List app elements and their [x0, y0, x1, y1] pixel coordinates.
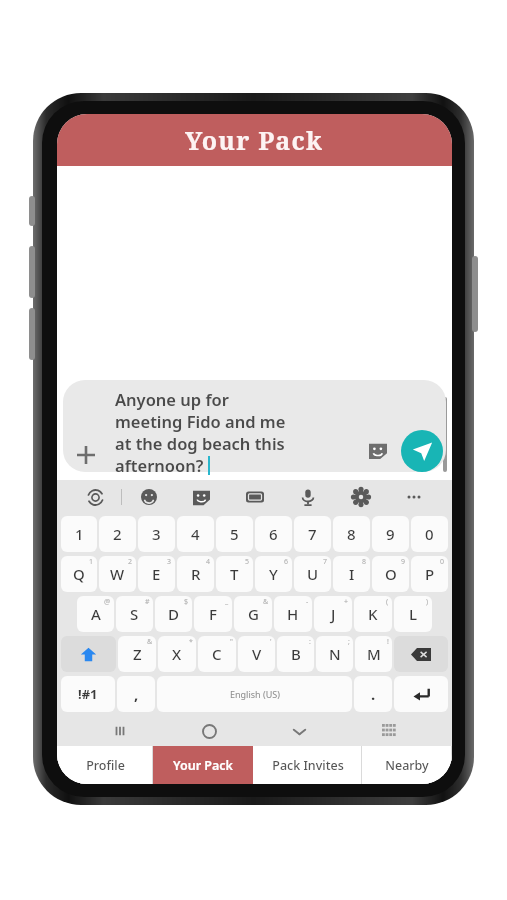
staticText: & [263, 597, 269, 607]
staticText: " [230, 637, 233, 647]
button[interactable]: Send [401, 430, 443, 472]
staticText: ( [386, 597, 389, 607]
staticText: Nearby [385, 757, 429, 774]
button[interactable]: # [116, 596, 153, 632]
staticText: 2 [128, 557, 133, 567]
button[interactable]: ( [354, 596, 392, 632]
button[interactable]: Shift [61, 636, 116, 672]
button[interactable]: Backspace [394, 636, 448, 672]
button[interactable]: Settings [334, 480, 387, 514]
button[interactable]: More options [387, 480, 440, 514]
staticText: V [252, 644, 262, 664]
button[interactable]: 2 [99, 516, 136, 552]
button[interactable]: Voice input [281, 480, 334, 514]
staticText: 3 [167, 557, 172, 567]
staticText: 4 [206, 557, 211, 567]
staticText: & [147, 637, 153, 647]
staticText: 1 [75, 524, 84, 544]
staticText: 4 [191, 524, 200, 544]
staticText: $ [184, 597, 189, 607]
button[interactable]: + [314, 596, 352, 632]
button[interactable]: 3 [138, 556, 175, 592]
button[interactable]: 4 [177, 556, 214, 592]
staticText: A [91, 604, 101, 624]
button[interactable]: ) [394, 596, 432, 632]
button[interactable]: 8 [333, 556, 370, 592]
button[interactable]: Pack Invites [253, 746, 362, 784]
button[interactable]: !#1 [61, 676, 115, 712]
button[interactable]: 1 [61, 556, 97, 592]
button[interactable]: 1 [61, 516, 97, 552]
button[interactable]: $ [155, 596, 192, 632]
button[interactable]: : [277, 636, 314, 672]
staticText: T [230, 564, 239, 584]
button[interactable]: Recents [75, 716, 164, 746]
button[interactable]: Translate [69, 480, 121, 514]
button[interactable]: 0 [411, 556, 448, 592]
button[interactable]: Profile [57, 746, 153, 784]
button[interactable]: 6 [255, 516, 292, 552]
button[interactable]: 6 [255, 556, 292, 592]
button[interactable]: Your Pack [153, 746, 253, 784]
staticText: 8 [347, 524, 356, 544]
button[interactable]: 4 [177, 516, 214, 552]
staticText: C [212, 644, 222, 664]
staticText: R [191, 564, 201, 584]
button[interactable]: Stickers [361, 434, 395, 468]
button[interactable]: 9 [372, 516, 409, 552]
button[interactable]: & [234, 596, 272, 632]
button[interactable]: - [274, 596, 312, 632]
button[interactable]: ' [238, 636, 275, 672]
staticText: Your Pack [185, 123, 324, 157]
staticText: D [168, 604, 179, 624]
button[interactable]: 9 [372, 556, 409, 592]
button[interactable]: 8 [333, 516, 370, 552]
button[interactable]: English (US) [157, 676, 352, 712]
button[interactable]: _ [194, 596, 232, 632]
button[interactable]: ! [355, 636, 392, 672]
button[interactable]: GIF [228, 480, 281, 514]
button[interactable]: @ [77, 596, 114, 632]
staticText: Anyone up for [115, 388, 229, 410]
staticText: O [385, 564, 397, 584]
button[interactable]: Keyboard layout [344, 716, 434, 746]
button[interactable]: 0 [411, 516, 448, 552]
staticText: ' [270, 637, 272, 647]
staticText: U [307, 564, 319, 584]
button[interactable]: & [118, 636, 156, 672]
button[interactable]: ; [316, 636, 353, 672]
staticText: _ [225, 597, 229, 607]
staticText: 1 [89, 557, 94, 567]
button[interactable]: Home [164, 716, 254, 746]
staticText: S [130, 604, 139, 624]
button[interactable]: 2 [99, 556, 136, 592]
button[interactable]: Hide keyboard [254, 716, 344, 746]
staticText: English (US) [230, 688, 280, 700]
button[interactable]: 5 [216, 556, 253, 592]
staticText: meeting Fido and me [115, 410, 286, 432]
staticText: F [209, 604, 217, 624]
staticText: N [329, 644, 341, 664]
staticText: . [371, 684, 376, 704]
button[interactable]: Nearby [362, 746, 452, 784]
staticText: Profile [86, 757, 125, 774]
button[interactable]: , [117, 676, 155, 712]
button[interactable]: Add attachment [69, 438, 103, 472]
button[interactable]: 3 [138, 516, 175, 552]
button[interactable]: 7 [294, 516, 331, 552]
staticText: ; [348, 637, 350, 647]
staticText: 6 [284, 557, 289, 567]
staticText: M [367, 644, 381, 664]
button[interactable]: . [354, 676, 392, 712]
button[interactable]: 5 [216, 516, 253, 552]
staticText: G [248, 604, 259, 624]
button[interactable]: " [198, 636, 236, 672]
button[interactable]: Emoji [122, 480, 175, 514]
button[interactable]: 7 [294, 556, 331, 592]
button[interactable]: Enter [394, 676, 448, 712]
button[interactable]: * [158, 636, 196, 672]
button[interactable]: Stickers [175, 480, 228, 514]
staticText: # [145, 597, 150, 607]
staticText: 0 [425, 524, 434, 544]
staticText: Y [269, 564, 278, 584]
